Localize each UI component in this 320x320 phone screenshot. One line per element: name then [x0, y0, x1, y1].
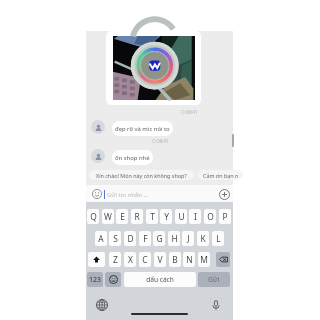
button[interactable]: đẹp rõ và mic nói to	[112, 121, 173, 136]
button[interactable]: Y	[160, 209, 172, 224]
button[interactable]: Change language	[96, 299, 108, 311]
button[interactable]: H	[168, 231, 180, 246]
button[interactable]: P	[219, 209, 231, 224]
button[interactable]: Cảm ơn bạn n	[198, 170, 243, 180]
button[interactable]: O	[204, 209, 216, 224]
staticText: H	[171, 233, 178, 244]
button[interactable]: Emoji	[92, 189, 102, 199]
button[interactable]: D	[124, 231, 136, 246]
button[interactable]: V	[154, 252, 166, 267]
staticText: Cảm ơn bạn n	[203, 172, 239, 179]
staticText: F	[143, 233, 148, 244]
button[interactable]: Voice input	[210, 299, 222, 311]
staticText: R	[134, 211, 140, 222]
button[interactable]: S	[109, 231, 121, 246]
staticText: Gửi	[208, 275, 220, 284]
staticText: ổn shop nhé	[115, 154, 150, 162]
staticText: đẹp rõ và mic nói to	[115, 125, 170, 133]
button[interactable]: Contact avatar	[91, 120, 105, 134]
staticText: Z	[113, 254, 118, 265]
staticText: E	[120, 211, 125, 222]
staticText: N	[186, 254, 193, 265]
staticText: G	[156, 233, 163, 244]
staticText: L	[216, 233, 221, 244]
staticText: A	[98, 233, 104, 244]
staticText: Q	[90, 211, 97, 222]
staticText: P	[222, 211, 228, 222]
button[interactable]: R	[131, 209, 143, 224]
staticText: V	[157, 254, 163, 265]
staticText: M	[200, 254, 208, 265]
staticText: X	[128, 254, 133, 265]
button[interactable]: Add attachment	[219, 189, 230, 200]
button[interactable]: T	[146, 209, 158, 224]
staticText: Gửi tin nhắn ...	[107, 191, 149, 199]
button[interactable]: Backspace	[216, 252, 230, 267]
button[interactable]: Contact avatar	[91, 149, 105, 163]
button[interactable]: F	[139, 231, 151, 246]
button[interactable]: Q	[87, 209, 99, 224]
button[interactable]: Shift	[88, 252, 105, 267]
staticText: U	[178, 211, 185, 222]
button[interactable]: M	[198, 252, 210, 267]
staticText: Xin chào! Món này còn không shop?	[96, 172, 187, 179]
button[interactable]: Z	[109, 252, 121, 267]
button[interactable]: Gửi	[198, 272, 230, 287]
button[interactable]: Emoji keyboard	[105, 272, 121, 287]
button[interactable]: C	[139, 252, 151, 267]
staticText: W	[104, 211, 112, 222]
staticText: J	[187, 233, 190, 244]
button[interactable]: U	[175, 209, 187, 224]
button[interactable]: X	[124, 252, 136, 267]
button[interactable]: L	[212, 231, 224, 246]
staticText: 123	[89, 275, 102, 285]
button[interactable]: J	[182, 231, 194, 246]
button[interactable]: N	[183, 252, 195, 267]
staticText: O	[207, 211, 214, 222]
staticText: K	[200, 233, 206, 244]
staticText: 00:41	[157, 138, 169, 144]
staticText: dấu cách	[146, 275, 174, 284]
button[interactable]: ổn shop nhé	[112, 150, 153, 165]
button[interactable]: I	[189, 209, 201, 224]
button[interactable]	[106, 31, 201, 105]
staticText: D	[127, 233, 134, 244]
button[interactable]: W	[102, 209, 114, 224]
button[interactable]: dấu cách	[124, 272, 196, 287]
staticText: I	[194, 211, 197, 222]
staticText: B	[172, 254, 178, 265]
button[interactable]: K	[197, 231, 209, 246]
button[interactable]: B	[169, 252, 181, 267]
staticText: S	[113, 233, 118, 244]
button[interactable]: A	[95, 231, 107, 246]
staticText: 00:41	[186, 109, 198, 115]
button[interactable]: G	[153, 231, 165, 246]
staticText: T	[150, 211, 155, 222]
button[interactable]: E	[116, 209, 128, 224]
staticText: C	[142, 254, 148, 265]
button[interactable]: 123	[87, 272, 103, 287]
staticText: Y	[164, 211, 169, 222]
button[interactable]: Xin chào! Món này còn không shop?	[89, 170, 194, 180]
